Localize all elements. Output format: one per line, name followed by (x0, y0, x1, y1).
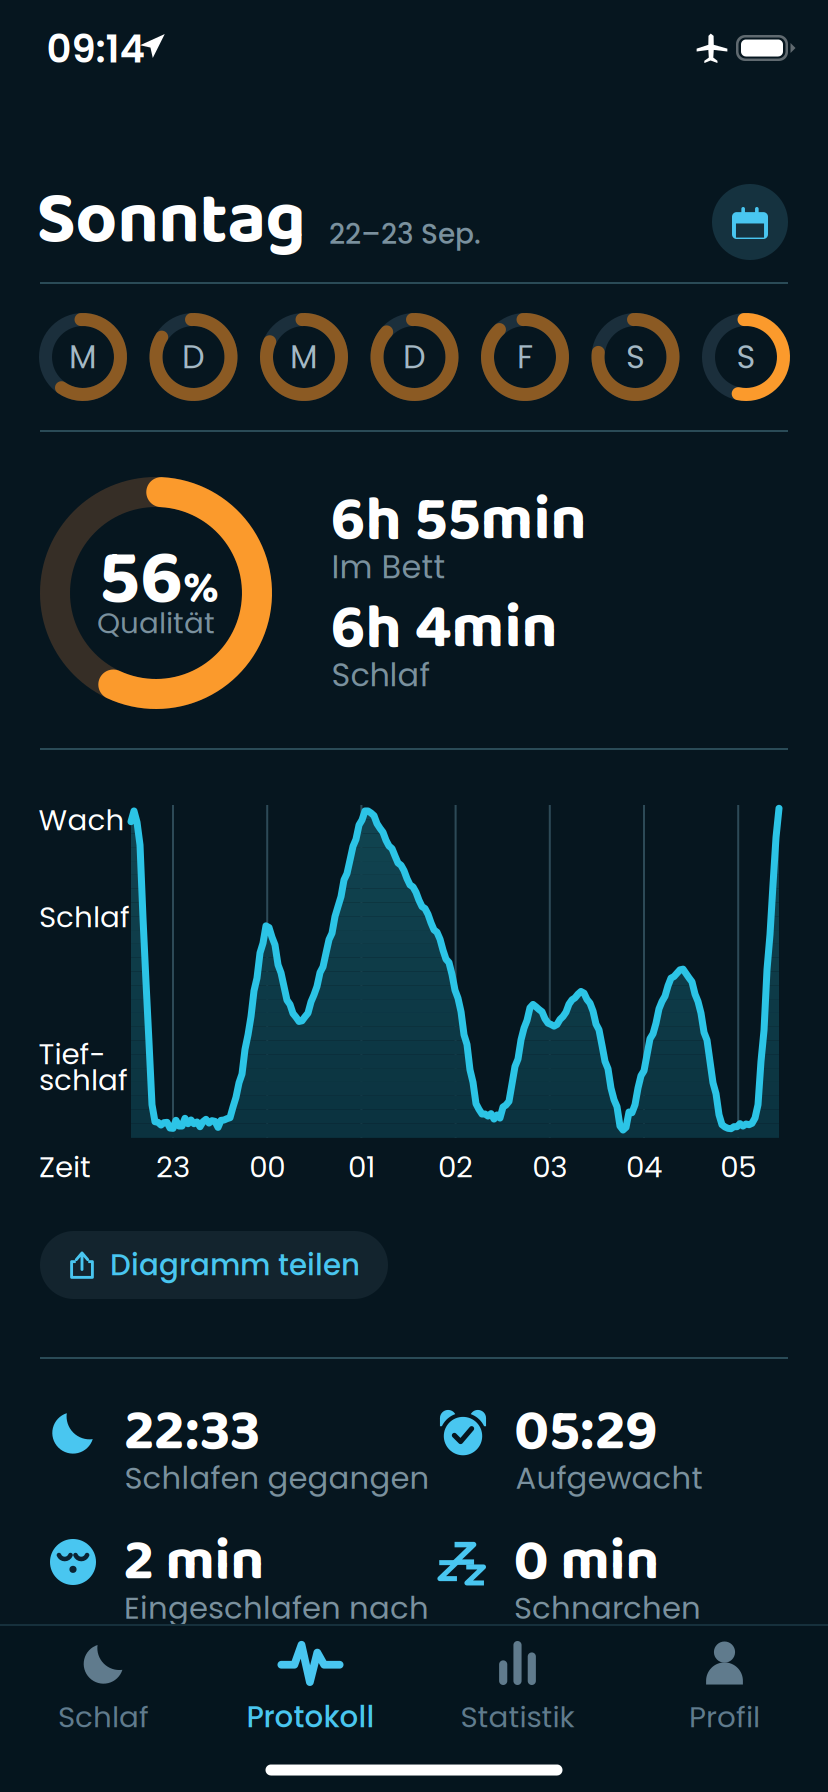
button[interactable]: F (481, 313, 569, 401)
button[interactable]: Diagramm teilen (40, 1231, 388, 1299)
staticText: Schlafen gegangen (124, 1456, 429, 1499)
staticText: 2 min (123, 1515, 264, 1609)
staticText: schlaf (39, 1059, 128, 1101)
staticText: M (69, 335, 97, 379)
staticText: Schlaf (39, 896, 130, 938)
staticText: Qualität (97, 602, 215, 644)
staticText: S (626, 335, 645, 379)
staticText: Aufgewacht (515, 1456, 702, 1499)
button[interactable]: Statistik (414, 1635, 621, 1745)
staticText: 00 (249, 1146, 285, 1188)
staticText: 23 (156, 1146, 190, 1188)
staticText: 03 (532, 1146, 567, 1188)
staticText: 05:29 (514, 1385, 658, 1479)
staticText: 56 (99, 518, 183, 642)
staticText: 6h 55min (330, 471, 586, 571)
staticText: 01 (348, 1146, 375, 1188)
button[interactable]: Schlaf (0, 1635, 207, 1745)
button[interactable]: S (702, 313, 790, 401)
staticText: Tief- (38, 1033, 105, 1075)
staticText: Zeit (39, 1146, 91, 1188)
button[interactable]: Kalender (712, 184, 788, 260)
staticText: 02 (438, 1146, 473, 1188)
button[interactable]: D (370, 313, 458, 401)
staticText: 6h 4min (330, 579, 557, 679)
staticText: 0 min (513, 1515, 659, 1609)
staticText: D (403, 335, 426, 379)
staticText: Eingeschlafen nach (124, 1586, 429, 1629)
button[interactable]: Profil (621, 1635, 828, 1745)
staticText: Schlaf (58, 1696, 149, 1738)
staticText: 05 (720, 1146, 756, 1188)
staticText: M (290, 335, 318, 379)
staticText: F (517, 335, 533, 379)
staticText: 22:33 (124, 1385, 260, 1479)
staticText: 04 (626, 1146, 662, 1188)
staticText: % (183, 553, 219, 625)
staticText: Wach (38, 799, 124, 841)
staticText: Profil (689, 1696, 760, 1738)
staticText: Diagramm teilen (110, 1244, 360, 1286)
button[interactable]: D (149, 313, 237, 401)
button[interactable]: M (39, 313, 127, 401)
staticText: 22–23 Sep. (329, 214, 481, 254)
staticText: Statistik (460, 1696, 574, 1738)
staticText: Im Bett (331, 545, 445, 589)
button[interactable]: S (591, 313, 679, 401)
staticText: Schlaf (331, 653, 430, 697)
staticText: Protokoll (246, 1696, 374, 1738)
button[interactable]: M (260, 313, 348, 401)
staticText: Sonntag (36, 163, 305, 279)
button[interactable]: Protokoll (207, 1635, 414, 1745)
staticText: D (182, 335, 205, 379)
staticText: Schnarchen (514, 1586, 701, 1629)
staticText: S (736, 335, 755, 379)
staticText: 09:14 (46, 22, 145, 76)
